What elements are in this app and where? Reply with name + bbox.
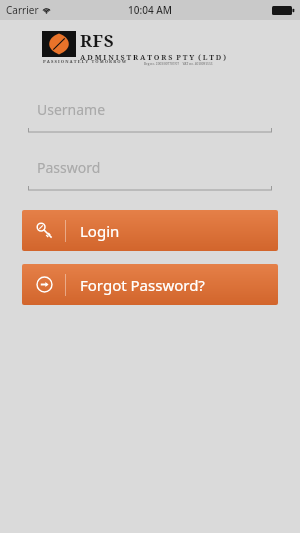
staticText: RFS <box>80 29 115 52</box>
staticText: Password <box>37 158 101 177</box>
staticText: P A S S I O N A T E L Y T O M O R R O W <box>43 59 127 65</box>
staticText: Username <box>37 100 106 119</box>
button[interactable]: Forgot Password <box>22 264 278 305</box>
staticText: Login <box>80 221 120 241</box>
button[interactable]: Username <box>28 100 272 133</box>
button[interactable]: Password <box>28 158 272 191</box>
button[interactable]: Login <box>22 210 278 251</box>
staticText: Carrier <box>6 3 39 17</box>
staticText: A D M I N I S T R A T O R S P T Y ( L T … <box>80 52 227 62</box>
staticText: 10:04 AM <box>128 3 172 17</box>
staticText: Forgot Password? <box>80 275 205 295</box>
staticText: Reg no. 2003/007707/07 VAT no. 401009155… <box>144 62 213 66</box>
